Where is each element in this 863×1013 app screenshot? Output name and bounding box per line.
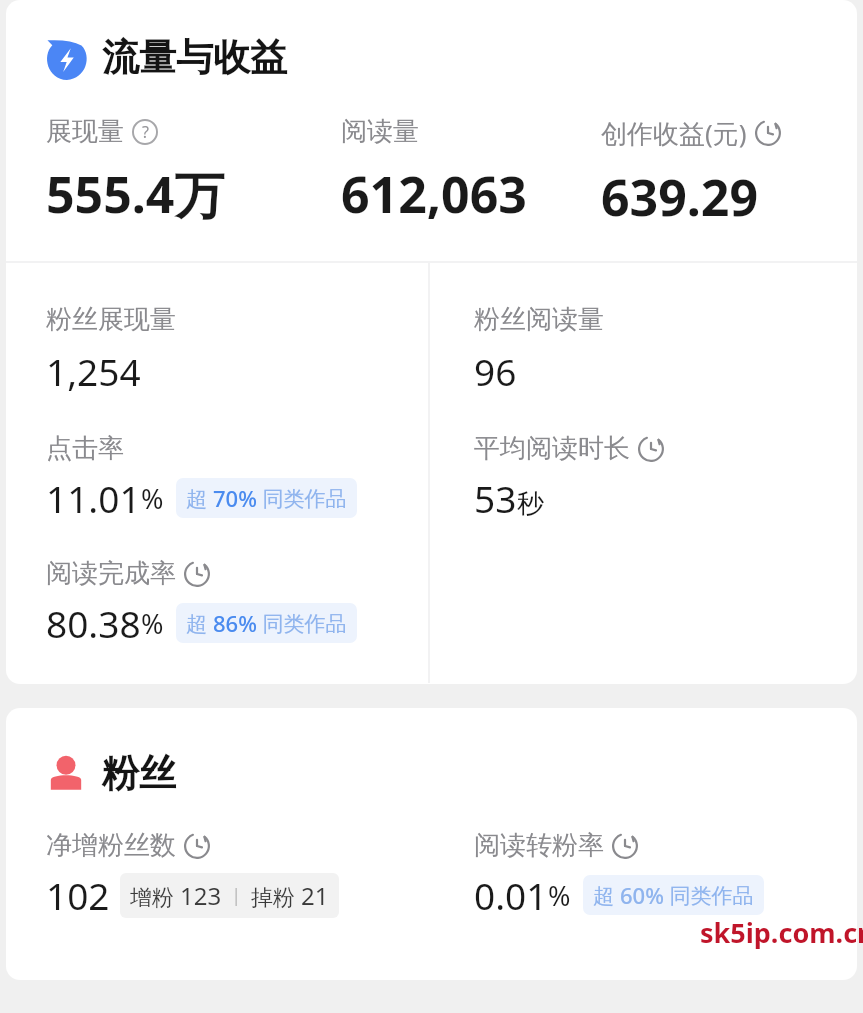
staticText: 80.38	[46, 598, 141, 648]
staticText: 阅读转粉率	[474, 829, 604, 862]
button[interactable]: 阅读转粉率	[474, 829, 857, 920]
button[interactable]: Updated periodically	[612, 833, 638, 859]
button[interactable]: 创作收益(元)	[601, 115, 781, 231]
staticText: %	[548, 877, 571, 914]
staticText: %	[141, 605, 164, 642]
staticText: 点击率	[46, 432, 124, 465]
button[interactable]: Help	[132, 119, 158, 145]
staticText: 秒	[517, 487, 544, 521]
button[interactable]: 点击率	[46, 432, 434, 523]
button[interactable]: 展现量	[46, 115, 341, 228]
staticText: 净增粉丝数	[46, 829, 176, 862]
staticText: 同类作品	[664, 881, 754, 910]
button[interactable]: 超	[583, 875, 764, 915]
staticText: 超	[593, 881, 620, 910]
staticText: 96	[474, 346, 517, 396]
staticText: 阅读完成率	[46, 557, 176, 590]
staticText: 粉丝阅读量	[474, 303, 604, 336]
button[interactable]: 平均阅读时长	[474, 432, 857, 523]
staticText: 流量与收益	[102, 34, 287, 81]
staticText: 超	[186, 484, 213, 513]
staticText: 阅读量	[341, 115, 419, 148]
button[interactable]: Updated periodically	[184, 561, 210, 587]
staticText: 掉粉	[251, 881, 301, 911]
staticText: 同类作品	[257, 484, 347, 513]
button[interactable]: 超	[176, 603, 357, 643]
staticText: 612,063	[341, 160, 527, 228]
staticText: 超	[186, 609, 213, 638]
button[interactable]: 粉丝阅读量	[474, 303, 857, 396]
button[interactable]: Traffic and earnings	[6, 0, 857, 89]
staticText: 1,254	[46, 346, 141, 396]
button[interactable]: Updated periodically	[638, 436, 664, 462]
staticText: 86%	[213, 608, 257, 638]
staticText: 创作收益(元)	[601, 115, 747, 151]
button[interactable]: Fans	[44, 752, 88, 796]
staticText: ?	[142, 121, 149, 143]
staticText: 展现量	[46, 115, 124, 148]
staticText: %	[141, 480, 164, 517]
staticText: 60%	[620, 880, 664, 910]
staticText: 53	[474, 473, 517, 523]
button[interactable]: 净增粉丝数	[46, 829, 434, 920]
button[interactable]: 粉丝展现量	[46, 303, 434, 396]
staticText: 639.29	[601, 163, 759, 231]
button[interactable]: Traffic and earnings	[44, 36, 88, 80]
button[interactable]: 阅读量	[341, 115, 601, 228]
button[interactable]: 增粉	[120, 873, 339, 918]
button[interactable]: 阅读完成率	[46, 557, 434, 648]
staticText: 0.01	[474, 870, 548, 920]
staticText: 21	[301, 879, 329, 912]
staticText: sk5ip.com.cn	[700, 914, 863, 951]
staticText: 555.4万	[46, 160, 225, 228]
button[interactable]: 超	[176, 478, 357, 518]
staticText: 粉丝	[102, 750, 176, 797]
button[interactable]: Updated periodically	[755, 120, 781, 146]
staticText: 平均阅读时长	[474, 432, 630, 465]
staticText: 11.01	[46, 473, 141, 523]
button[interactable]: Updated periodically	[184, 833, 210, 859]
staticText: |	[222, 883, 251, 908]
staticText: 123	[180, 879, 222, 912]
staticText: 同类作品	[257, 609, 347, 638]
staticText: 增粉	[130, 881, 180, 911]
button[interactable]: Fans	[6, 708, 857, 803]
staticText: 102	[46, 870, 110, 920]
staticText: 粉丝展现量	[46, 303, 176, 336]
staticText: 70%	[213, 483, 257, 513]
